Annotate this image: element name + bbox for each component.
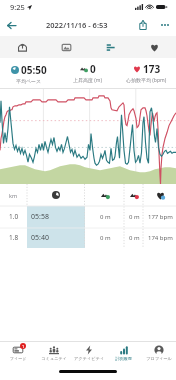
staticText: 05:40 [31, 233, 49, 243]
button[interactable]: 1 [0, 342, 36, 363]
button[interactable]: アクティビティ [71, 342, 106, 363]
button[interactable]: Share [132, 14, 154, 36]
button[interactable]: Favorite [132, 36, 176, 58]
button[interactable]: 1.0 [0, 206, 176, 227]
button[interactable]: 計測履歴 [106, 342, 141, 363]
staticText: 0 [90, 62, 96, 76]
staticText: 0 m [129, 213, 140, 221]
staticText: 1 [22, 344, 25, 349]
button[interactable]: More options [154, 14, 176, 36]
staticText: km [9, 192, 18, 199]
staticText: 計測履歴 [115, 356, 132, 361]
staticText: プロフィール [146, 356, 172, 361]
staticText: 上昇高度 (m) [73, 77, 102, 84]
staticText: アクティビティ [74, 356, 104, 361]
button[interactable]: 05:50 [0, 58, 58, 88]
staticText: 1.0 [9, 212, 19, 221]
staticText: 177 bpm [148, 213, 173, 221]
staticText: 0 m [129, 234, 140, 242]
staticText: 9:25 [10, 2, 25, 12]
staticText: 173 [143, 62, 161, 76]
staticText: 05:58 [31, 212, 49, 222]
staticText: フィード [9, 356, 27, 361]
staticText: 174 bpm [148, 234, 173, 242]
button[interactable]: 0 [58, 58, 117, 88]
staticText: 0 m [100, 234, 111, 242]
button[interactable]: Export [0, 36, 44, 58]
button[interactable]: Back [0, 14, 22, 36]
staticText: 心拍数平均 (bpm) [126, 77, 167, 84]
staticText: 平均ペース [16, 78, 42, 84]
staticText: 05:50 [21, 63, 47, 77]
button[interactable]: 1.8 [0, 227, 176, 248]
staticText: 0 m [100, 213, 111, 221]
staticText: コミュニティ [41, 356, 67, 361]
button[interactable]: コミュニティ [36, 342, 71, 363]
button[interactable]: プロフィール [141, 342, 176, 363]
button[interactable]: Charts [88, 36, 132, 58]
button[interactable]: Photos [44, 36, 88, 58]
button[interactable]: 173 [117, 58, 176, 88]
staticText: 2022/11/16 - 6:53 [46, 20, 108, 30]
staticText: 1.8 [9, 233, 19, 242]
